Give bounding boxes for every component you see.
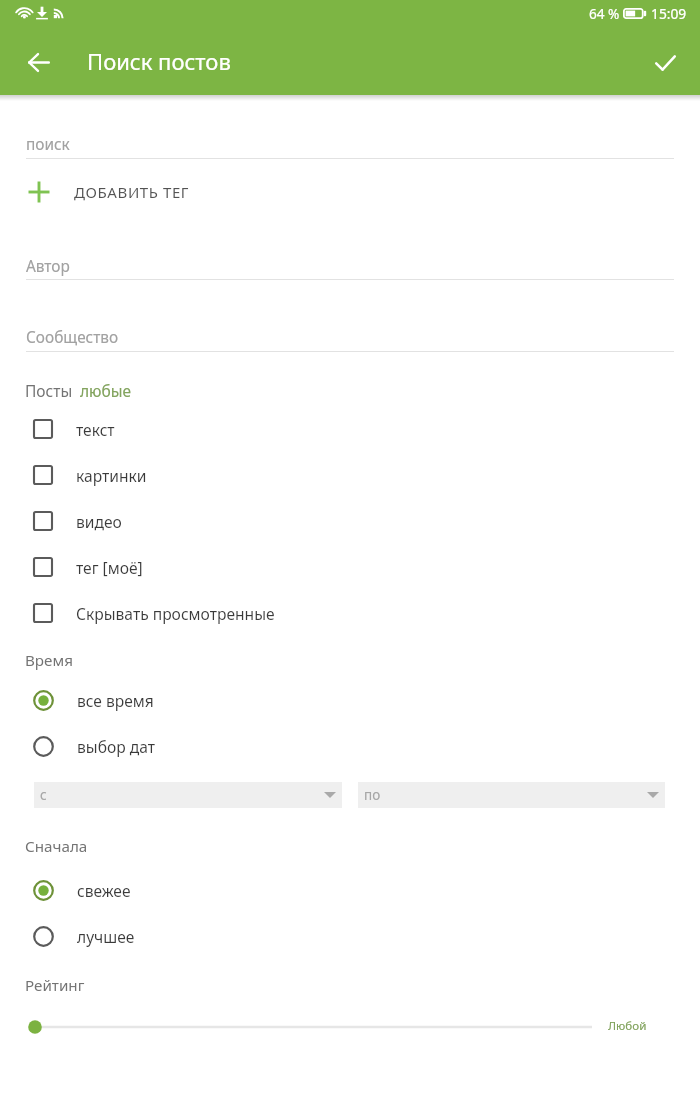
staticText: Автор [26,256,70,277]
staticText: Время [25,650,73,671]
button[interactable]: лучшее [0,913,700,959]
button[interactable] [0,1013,700,1041]
staticText: Скрывать просмотренные [76,603,275,624]
staticText: все время [77,690,154,711]
button[interactable]: с [34,782,342,808]
button[interactable]: выбор дат [0,723,700,769]
staticText: Рейтинг [25,975,85,996]
staticText: Любой [608,1018,647,1034]
button[interactable] [26,126,674,159]
button[interactable]: по [358,782,665,808]
button[interactable]: свежее [0,867,700,913]
staticText: выбор дат [77,736,155,757]
button[interactable]: ДОБАВИТЬ ТЕГ [0,169,700,215]
button[interactable]: все время [0,677,700,723]
staticText: свежее [77,880,131,901]
staticText: Поиск постов [87,46,231,76]
button[interactable]: любые [80,380,132,401]
button[interactable]: картинки [0,452,700,498]
button[interactable]: видео [0,498,700,544]
staticText: 64 % [589,4,620,23]
button[interactable]: текст [0,406,700,452]
button[interactable] [26,319,674,352]
staticText: по [364,786,381,804]
staticText: текст [76,419,115,440]
staticText: Посты [25,380,73,401]
button[interactable]: Apply [641,39,689,87]
staticText: видео [76,511,122,532]
staticText: любые [80,380,132,401]
staticText: Сначала [25,836,88,857]
staticText: ДОБАВИТЬ ТЕГ [74,182,190,202]
staticText: 15:09 [651,4,687,23]
button[interactable]: Скрывать просмотренные [0,590,700,636]
button[interactable]: тег [моё] [0,544,700,590]
staticText: лучшее [77,926,135,947]
staticText: с [40,786,47,804]
staticText: поиск [26,134,70,155]
button[interactable]: Back [15,38,63,86]
staticText: картинки [76,465,147,486]
staticText: тег [моё] [76,557,143,578]
button[interactable] [26,248,674,280]
staticText: Сообщество [26,327,119,348]
